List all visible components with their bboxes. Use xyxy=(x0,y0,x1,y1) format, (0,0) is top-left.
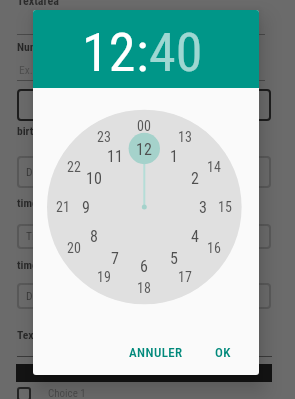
staticText: 00 xyxy=(137,118,151,134)
staticText: 21 xyxy=(56,199,70,215)
button[interactable]: OK xyxy=(199,334,247,370)
staticText: 12 xyxy=(136,140,152,159)
staticText: Textarea xyxy=(17,328,58,341)
staticText: Ex. 13 xyxy=(19,63,47,76)
staticText: 22 xyxy=(67,159,81,175)
staticText: 8 xyxy=(90,227,98,246)
staticText: 18 xyxy=(137,280,151,296)
staticText: ANNULER xyxy=(129,345,183,360)
staticText: OK xyxy=(215,345,231,360)
button[interactable]: 40 xyxy=(149,21,203,84)
staticText: Date xyxy=(26,165,47,178)
staticText: time xyxy=(17,258,38,271)
staticText: Number xyxy=(17,40,54,53)
staticText: 11 xyxy=(107,147,123,166)
staticText: 1 xyxy=(170,147,178,166)
staticText: Time xyxy=(26,229,49,242)
staticText: 19 xyxy=(97,269,111,285)
staticText: 6 xyxy=(140,257,148,276)
staticText: 7 xyxy=(111,249,119,268)
staticText: time xyxy=(17,196,38,209)
staticText: 5 xyxy=(170,249,178,268)
staticText: 9 xyxy=(82,198,90,217)
staticText: 23 xyxy=(97,129,111,145)
staticText: 15 xyxy=(218,199,232,215)
button[interactable] xyxy=(17,387,31,399)
staticText: Choice 1 xyxy=(48,387,86,399)
staticText: 20 xyxy=(67,240,81,256)
button[interactable]: ANNULER xyxy=(123,334,189,370)
staticText: 4 xyxy=(191,227,199,246)
staticText: 13 xyxy=(178,129,192,145)
staticText: 3 xyxy=(199,198,207,217)
staticText: Textarea xyxy=(17,0,59,8)
staticText: birthday xyxy=(17,124,56,137)
staticText: 14 xyxy=(207,159,221,175)
staticText: 16 xyxy=(207,240,221,256)
staticText: : xyxy=(136,21,149,84)
staticText: Date xyxy=(26,289,47,302)
button[interactable]: 12 xyxy=(82,21,136,84)
staticText: 10 xyxy=(86,169,102,188)
staticText: 17 xyxy=(178,269,192,285)
staticText: 2 xyxy=(191,169,199,188)
